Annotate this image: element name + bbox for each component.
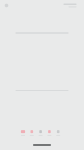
button[interactable]: Profile	[1, 0, 11, 10]
button[interactable]: Tab	[45, 128, 54, 138]
button[interactable]: Tab	[54, 128, 63, 138]
button[interactable]: Tab	[36, 128, 45, 138]
button[interactable]: Tab	[27, 128, 36, 138]
button[interactable]: Tab	[19, 128, 27, 138]
